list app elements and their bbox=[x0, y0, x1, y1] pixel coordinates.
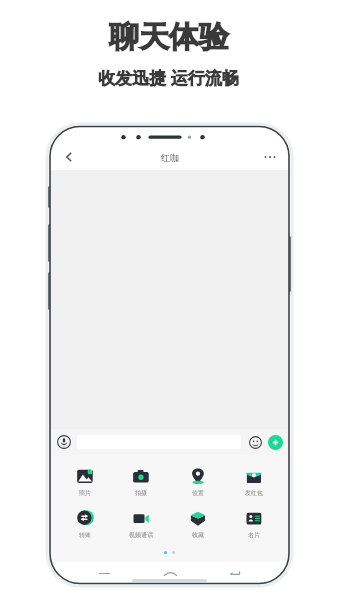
button[interactable]: Back bbox=[58, 146, 80, 168]
staticText: 收藏 bbox=[192, 531, 204, 539]
staticText: 红咖 bbox=[161, 152, 179, 163]
button[interactable]: Home bbox=[158, 562, 182, 584]
button[interactable]: Emoji bbox=[247, 434, 263, 450]
button[interactable]: More functions bbox=[268, 435, 283, 450]
button[interactable]: 照片 bbox=[63, 467, 107, 497]
staticText: 拍摄 bbox=[135, 489, 147, 497]
staticText: 位置 bbox=[192, 489, 204, 497]
button[interactable]: 名片 bbox=[232, 509, 276, 539]
button[interactable]: More options bbox=[259, 146, 281, 168]
button[interactable]: Back bbox=[223, 562, 247, 584]
button[interactable]: 收藏 bbox=[176, 509, 220, 539]
staticText: 发红包 bbox=[245, 489, 263, 497]
staticText: 照片 bbox=[79, 489, 91, 497]
button[interactable]: Recents bbox=[92, 562, 116, 584]
button[interactable]: 转账 bbox=[63, 509, 107, 539]
staticText: 收发迅捷 运行流畅 bbox=[98, 66, 239, 89]
button[interactable]: 拍摄 bbox=[119, 467, 163, 497]
button[interactable]: 视频通话 bbox=[119, 509, 163, 539]
staticText: 名片 bbox=[248, 531, 260, 539]
button[interactable]: 发红包 bbox=[232, 467, 276, 497]
staticText: 聊天体验 bbox=[109, 18, 229, 56]
staticText: 视频通话 bbox=[129, 531, 153, 539]
staticText: 转账 bbox=[79, 531, 91, 539]
button[interactable]: 位置 bbox=[176, 467, 220, 497]
button[interactable]: Voice message bbox=[56, 434, 72, 450]
